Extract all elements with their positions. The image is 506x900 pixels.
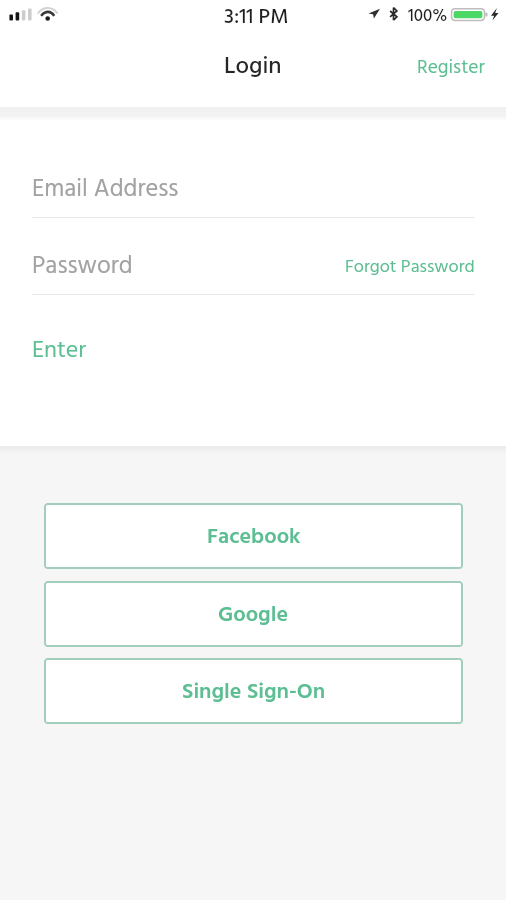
staticText: Single Sign-On bbox=[182, 675, 326, 710]
staticText: Register bbox=[417, 52, 485, 83]
staticText: 100% bbox=[408, 3, 448, 30]
button[interactable]: Email Address bbox=[32, 168, 474, 210]
staticText: Login bbox=[224, 48, 282, 86]
button[interactable]: Register bbox=[417, 57, 485, 88]
button[interactable]: Enter bbox=[32, 330, 87, 372]
staticText: Google bbox=[218, 598, 289, 633]
staticText: 3:11 PM bbox=[224, 1, 289, 35]
button[interactable]: Password bbox=[32, 245, 262, 287]
staticText: Email Address bbox=[32, 170, 179, 209]
staticText: Facebook bbox=[207, 520, 301, 555]
staticText: Forgot Password bbox=[345, 253, 475, 282]
button[interactable]: Forgot Password bbox=[294, 246, 475, 288]
button[interactable]: Sign in with Facebook bbox=[44, 503, 463, 569]
button[interactable]: Sign in with Single Sign-On bbox=[44, 658, 463, 724]
button[interactable]: Sign in with Google bbox=[44, 581, 463, 647]
staticText: Password bbox=[32, 247, 133, 286]
staticText: Enter bbox=[32, 332, 87, 370]
